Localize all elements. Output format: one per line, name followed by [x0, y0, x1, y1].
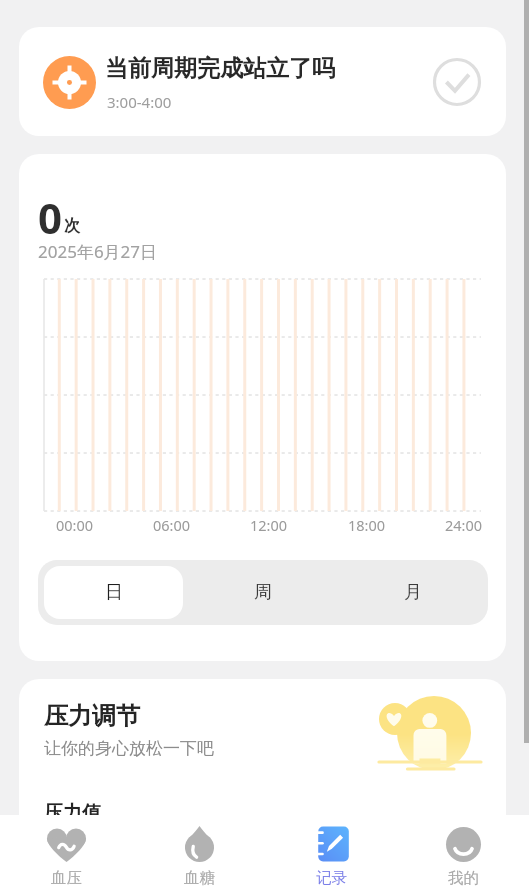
- button[interactable]: 周: [188, 560, 338, 625]
- staticText: 压力调节: [44, 701, 140, 731]
- staticText: 血糖: [184, 868, 215, 888]
- staticText: 血压: [51, 868, 82, 888]
- button[interactable]: 标记完成: [431, 56, 483, 108]
- button[interactable]: 记录: [265, 815, 397, 894]
- staticText: 00:00: [56, 515, 94, 535]
- staticText: 0: [38, 189, 63, 246]
- button[interactable]: 月: [338, 560, 488, 625]
- button[interactable]: 日: [44, 566, 183, 619]
- staticText: 18:00: [348, 515, 386, 535]
- staticText: 24:00: [445, 515, 483, 535]
- staticText: 当前周期完成站立了吗: [105, 54, 335, 83]
- staticText: 周: [254, 581, 272, 604]
- staticText: 3:00-4:00: [107, 92, 172, 112]
- button[interactable]: 压力调节: [19, 679, 506, 859]
- staticText: 2025年6月27日: [38, 240, 158, 263]
- staticText: 压力值: [44, 801, 101, 825]
- staticText: 我的: [448, 868, 479, 888]
- button[interactable]: 血糖: [133, 815, 265, 894]
- button[interactable]: 当前周期完成站立了吗: [19, 27, 506, 136]
- button[interactable]: 我的: [397, 815, 529, 894]
- staticText: 月: [404, 581, 422, 604]
- staticText: 记录: [316, 868, 347, 888]
- staticText: 日: [105, 581, 123, 604]
- staticText: 次: [64, 216, 80, 236]
- button[interactable]: 血压: [0, 815, 133, 894]
- staticText: 12:00: [250, 515, 288, 535]
- staticText: 让你的身心放松一下吧: [44, 738, 214, 759]
- staticText: 06:00: [153, 515, 191, 535]
